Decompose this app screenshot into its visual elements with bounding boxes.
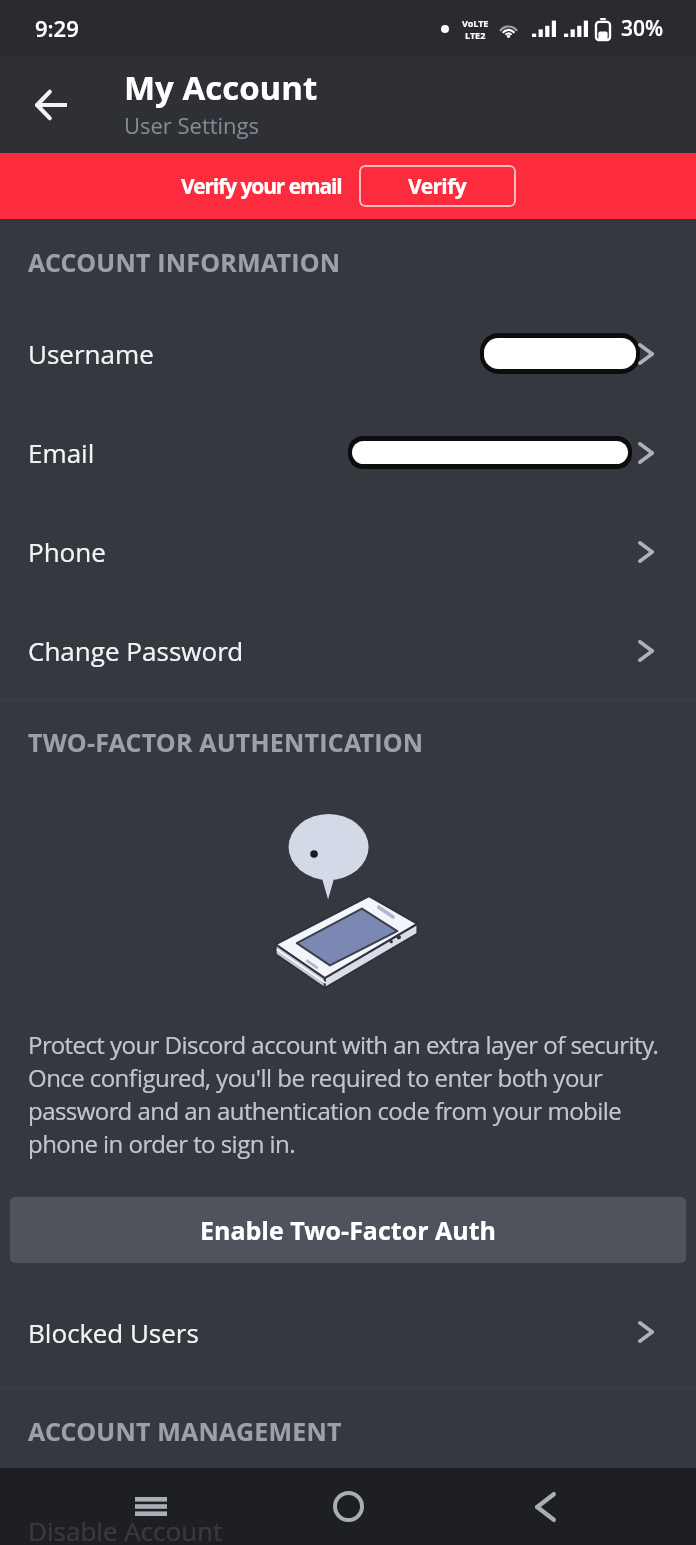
button[interactable]: Enable Two-Factor Auth bbox=[10, 1197, 686, 1263]
button[interactable]: Home bbox=[293, 1468, 403, 1545]
staticText: Blocked Users bbox=[28, 1315, 199, 1350]
staticText: Enable Two-Factor Auth bbox=[200, 1213, 496, 1247]
staticText: VoLTE bbox=[462, 17, 489, 29]
staticText: User Settings bbox=[124, 110, 260, 140]
staticText: Email bbox=[28, 435, 95, 470]
button[interactable]: Blocked Users bbox=[0, 1287, 696, 1377]
button[interactable]: Back bbox=[14, 68, 88, 142]
staticText: LTE2 bbox=[465, 29, 486, 41]
staticText: 30% bbox=[621, 14, 664, 43]
button[interactable]: Recent apps bbox=[96, 1468, 206, 1545]
staticText: TWO-FACTOR AUTHENTICATION bbox=[28, 725, 424, 759]
staticText: Phone bbox=[28, 534, 106, 569]
staticText: ACCOUNT MANAGEMENT bbox=[28, 1414, 342, 1448]
staticText: My Account bbox=[124, 65, 318, 110]
button[interactable]: Back bbox=[490, 1468, 600, 1545]
staticText: Change Password bbox=[28, 633, 244, 668]
button[interactable]: Change Password bbox=[0, 601, 696, 700]
button[interactable]: Verify bbox=[359, 165, 516, 207]
staticText: Disable Account bbox=[28, 1513, 223, 1545]
button[interactable]: Username bbox=[0, 304, 696, 403]
staticText: 9:29 bbox=[35, 13, 79, 43]
button[interactable]: Phone bbox=[0, 502, 696, 601]
staticText: Verify bbox=[408, 172, 467, 201]
button[interactable]: Email bbox=[0, 403, 696, 502]
staticText: Verify your email bbox=[181, 172, 342, 201]
staticText: Protect your Discord account with an ext… bbox=[28, 1028, 682, 1160]
staticText: ACCOUNT INFORMATION bbox=[28, 245, 341, 279]
staticText: Username bbox=[28, 336, 154, 371]
